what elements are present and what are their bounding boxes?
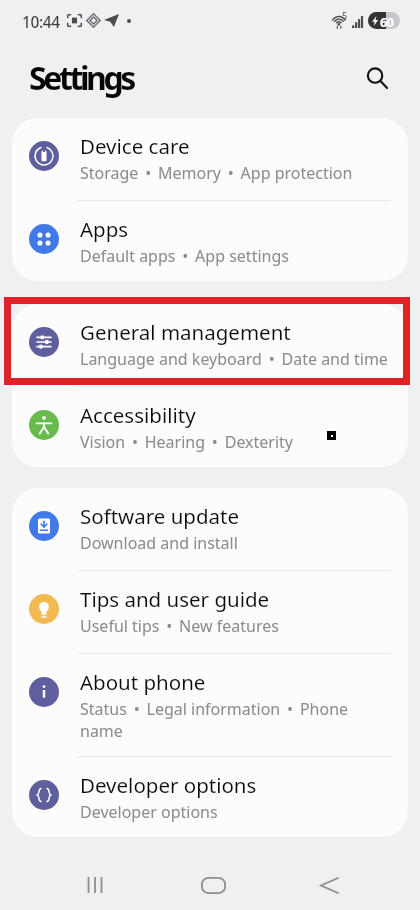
button[interactable]: Recents	[55, 858, 135, 910]
staticText: Settings	[29, 56, 133, 100]
staticText: 10:44	[22, 11, 60, 32]
button[interactable]: Developer options	[12, 757, 408, 837]
staticText: Device care	[80, 132, 190, 160]
button[interactable]: Apps	[12, 201, 408, 281]
staticText: Default apps • App settings	[80, 245, 289, 267]
staticText: Vision • Hearing • Dexterity	[80, 431, 294, 453]
staticText: Download and install	[80, 532, 238, 554]
staticText: Status • Legal information • Phone name	[80, 698, 349, 742]
staticText: Storage • Memory • App protection	[80, 162, 353, 184]
button[interactable]: Accessibility	[12, 387, 408, 467]
button[interactable]: Home	[173, 858, 253, 910]
staticText: Language and keyboard • Date and time	[80, 348, 388, 370]
button[interactable]: Search	[356, 57, 398, 99]
staticText: Software update	[80, 502, 240, 530]
button[interactable]: About phone	[12, 654, 408, 756]
staticText: Useful tips • New features	[80, 615, 279, 637]
staticText: Developer options	[80, 771, 257, 799]
staticText: General management	[80, 318, 291, 346]
button[interactable]: Device care	[12, 118, 408, 200]
button[interactable]: Software update	[12, 488, 408, 570]
staticText: 5	[342, 9, 348, 21]
staticText: 60	[380, 14, 394, 29]
button[interactable]: General management	[12, 304, 408, 386]
button[interactable]: Back	[289, 858, 369, 910]
staticText: About phone	[80, 668, 206, 696]
staticText: Developer options	[80, 801, 218, 823]
staticText: Accessibility	[80, 401, 196, 429]
staticText: Tips and user guide	[80, 585, 270, 613]
staticText: Apps	[80, 215, 129, 243]
button[interactable]: Tips and user guide	[12, 571, 408, 653]
